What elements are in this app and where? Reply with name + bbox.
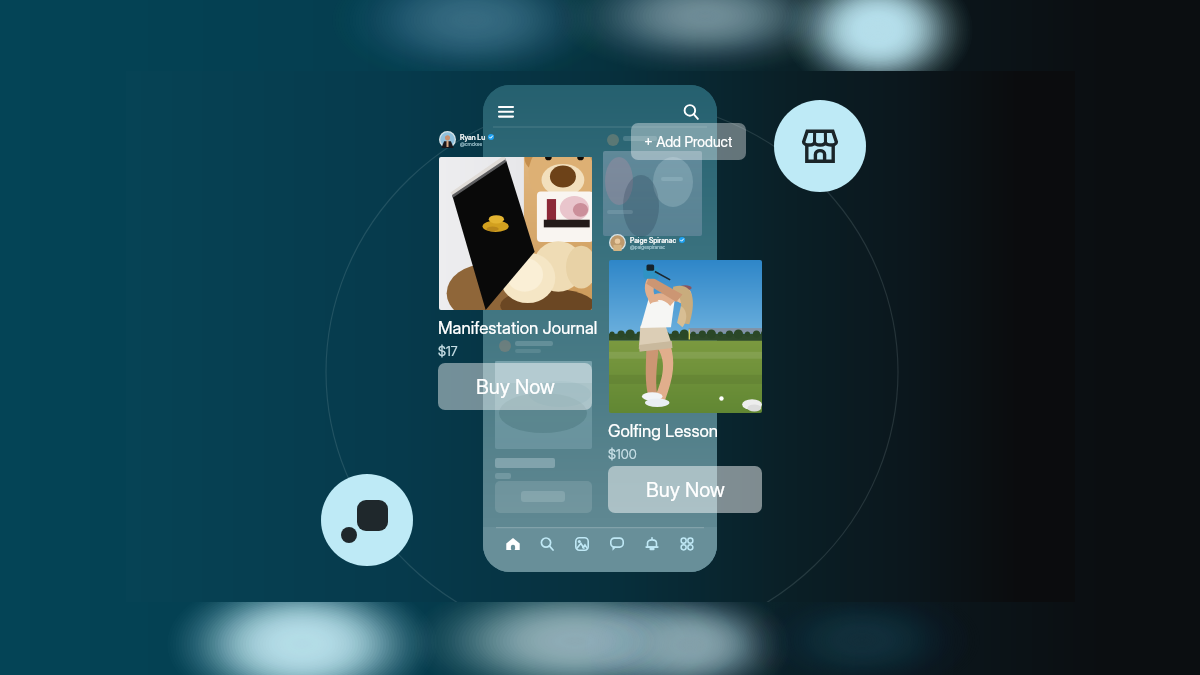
staticText: Golfing Lesson xyxy=(608,421,719,442)
staticText: $17 xyxy=(438,343,458,359)
button[interactable]: Search xyxy=(676,97,706,127)
button[interactable]: Collections xyxy=(321,474,413,566)
button[interactable]: Storefront xyxy=(774,100,866,192)
button[interactable]: Notifications xyxy=(634,527,669,561)
staticText: $100 xyxy=(608,446,637,462)
staticText: Ryan Lu xyxy=(460,133,486,141)
staticText: @paigespiranac xyxy=(630,244,666,250)
button[interactable]: Search xyxy=(530,527,564,561)
button[interactable]: Menu xyxy=(491,96,521,126)
button[interactable]: Buy Now xyxy=(608,466,762,513)
staticText: Paige Spiranac xyxy=(630,236,677,244)
staticText: @cmckee xyxy=(460,141,483,147)
staticText: Buy Now xyxy=(476,375,555,399)
button[interactable]: Apps xyxy=(669,527,704,561)
staticText: Manifestation Journal xyxy=(438,318,598,339)
button[interactable]: Buy Now xyxy=(438,363,592,410)
button[interactable]: + Add Product xyxy=(631,123,746,160)
button[interactable]: Gallery xyxy=(564,527,599,561)
staticText: + Add Product xyxy=(644,133,733,150)
staticText: Buy Now xyxy=(646,478,725,502)
button[interactable]: Home xyxy=(496,527,530,561)
button[interactable]: Messages xyxy=(599,527,634,561)
